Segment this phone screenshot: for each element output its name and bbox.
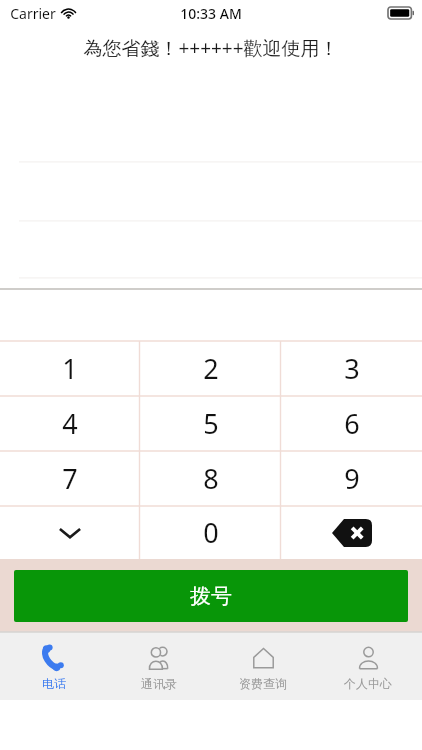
button[interactable]: 8 — [140, 451, 281, 506]
staticText: 4 — [62, 405, 78, 442]
button[interactable]: 1 — [0, 341, 140, 396]
button[interactable]: 6 — [281, 396, 422, 451]
staticText: 10:33 AM — [180, 4, 242, 23]
button[interactable]: 个人中心 — [318, 633, 418, 700]
staticText: 6 — [344, 405, 360, 442]
staticText: 7 — [62, 460, 78, 497]
button[interactable]: 9 — [281, 451, 422, 506]
staticText: 拨号 — [190, 583, 232, 609]
staticText: 0 — [203, 514, 219, 551]
button[interactable]: 通讯录 — [109, 633, 209, 700]
button[interactable]: 7 — [0, 451, 140, 506]
staticText: 通讯录 — [141, 676, 177, 691]
staticText: Carrier — [10, 4, 56, 23]
button[interactable]: 3 — [281, 341, 422, 396]
button[interactable]: 2 — [140, 341, 281, 396]
staticText: 3 — [344, 350, 360, 387]
staticText: 9 — [344, 460, 360, 497]
button[interactable]: Delete — [281, 506, 422, 559]
button[interactable]: 4 — [0, 396, 140, 451]
button[interactable]: 资费查询 — [213, 633, 313, 700]
staticText: 1 — [62, 350, 78, 387]
button[interactable]: 拨号 — [14, 570, 408, 622]
staticText: 為您省錢！++++++歡迎使用！ — [83, 35, 339, 61]
button[interactable]: Hide keypad — [0, 506, 140, 559]
staticText: 5 — [203, 405, 219, 442]
staticText: 8 — [203, 460, 219, 497]
button[interactable]: 电话 — [4, 633, 104, 700]
staticText: 资费查询 — [239, 676, 287, 691]
staticText: 2 — [203, 350, 219, 387]
staticText: 电话 — [42, 676, 66, 691]
staticText: 个人中心 — [344, 676, 392, 691]
button[interactable]: 0 — [140, 506, 281, 559]
button[interactable]: 5 — [140, 396, 281, 451]
